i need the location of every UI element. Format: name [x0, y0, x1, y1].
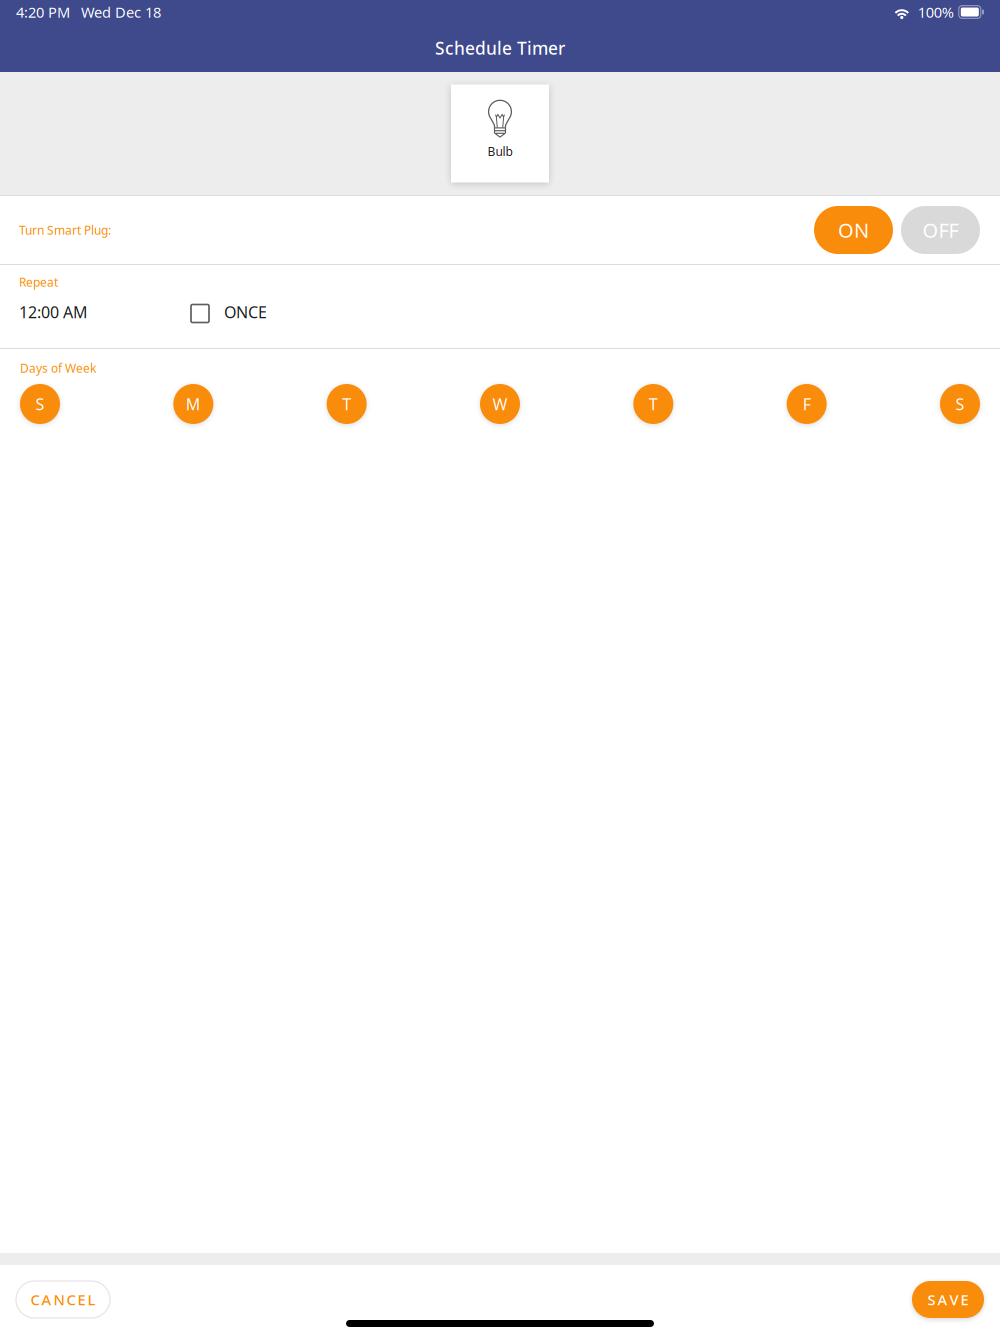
- staticText: ON: [838, 217, 869, 243]
- staticText: Bulb: [487, 143, 512, 159]
- button[interactable]: S: [20, 384, 60, 424]
- staticText: OFF: [922, 217, 958, 243]
- staticText: T: [342, 393, 351, 415]
- staticText: Days of Week: [20, 360, 96, 376]
- button[interactable]: F: [787, 384, 827, 424]
- staticText: M: [186, 393, 201, 415]
- staticText: C A N C E L: [30, 1290, 95, 1309]
- button[interactable]: OFF: [901, 206, 980, 254]
- button[interactable]: Repeat once: [191, 302, 267, 322]
- staticText: 12:00 AM: [19, 301, 88, 323]
- button[interactable]: W: [480, 384, 520, 424]
- button[interactable]: S A V E: [912, 1281, 984, 1318]
- staticText: S: [35, 393, 44, 415]
- staticText: Turn Smart Plug:: [19, 222, 111, 238]
- button[interactable]: C A N C E L: [16, 1281, 110, 1318]
- button[interactable]: T: [327, 384, 367, 424]
- staticText: T: [649, 393, 658, 415]
- staticText: 100%: [918, 2, 954, 22]
- staticText: S: [955, 393, 964, 415]
- staticText: ONCE: [224, 301, 267, 323]
- button[interactable]: ON: [814, 206, 893, 254]
- staticText: 4:20 PM: [16, 2, 70, 22]
- staticText: Wed Dec 18: [81, 2, 161, 22]
- staticText: F: [803, 393, 811, 415]
- button[interactable]: Bulb device: [451, 84, 549, 182]
- staticText: W: [492, 393, 507, 415]
- staticText: S A V E: [927, 1290, 968, 1309]
- button[interactable]: T: [633, 384, 673, 424]
- button[interactable]: M: [173, 384, 213, 424]
- staticText: Repeat: [19, 274, 58, 290]
- button[interactable]: S: [940, 384, 980, 424]
- staticText: Schedule Timer: [435, 36, 565, 59]
